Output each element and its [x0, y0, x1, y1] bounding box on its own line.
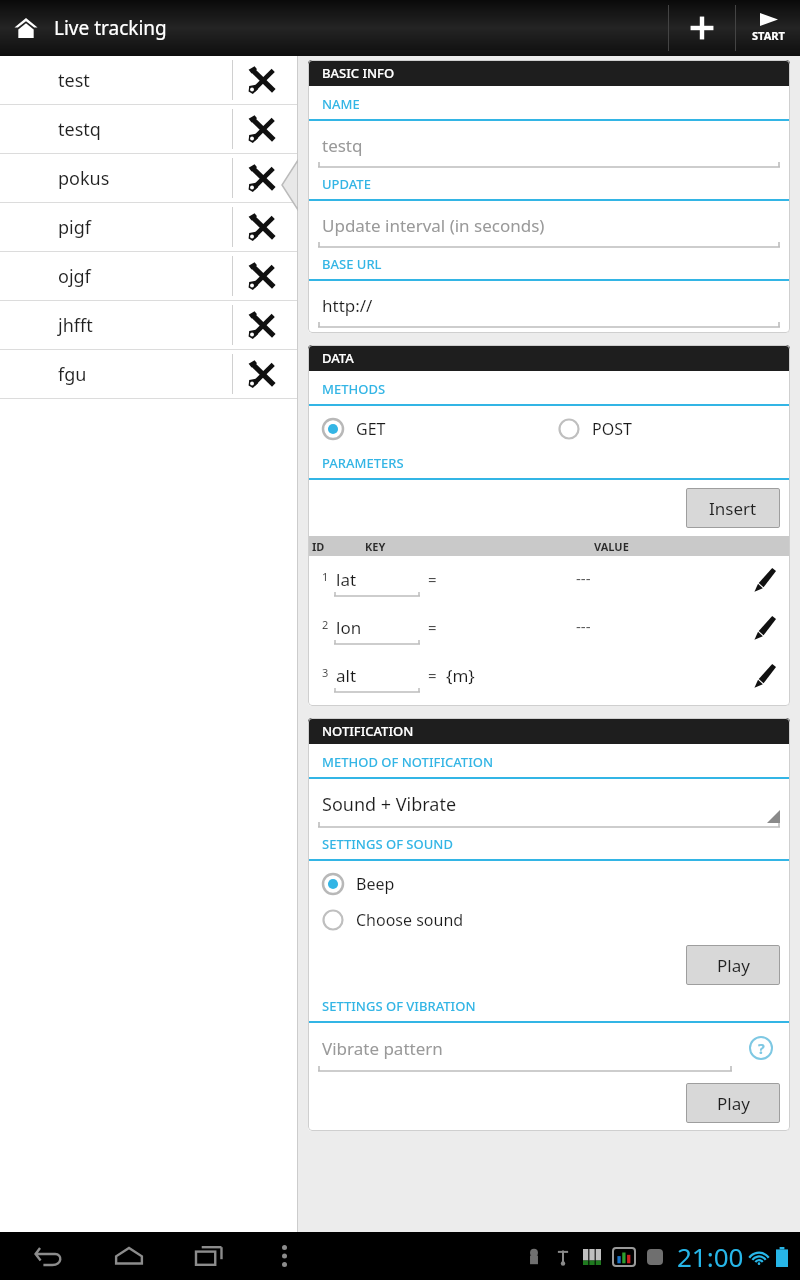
button[interactable]: Settings — [233, 56, 298, 104]
staticText: DATA — [322, 349, 354, 367]
button[interactable]: ojgf — [0, 252, 298, 300]
button[interactable]: Edit parameter — [748, 659, 782, 693]
staticText: SETTINGS OF SOUND — [322, 835, 453, 853]
button[interactable]: Settings — [233, 154, 298, 202]
button[interactable]: 2 — [308, 604, 790, 652]
button[interactable]: Edit parameter — [748, 611, 782, 645]
staticText: Update interval (in seconds) — [322, 214, 545, 237]
staticText: Insert — [709, 497, 757, 520]
staticText: BASE URL — [322, 255, 382, 273]
staticText: {m} — [446, 664, 475, 687]
staticText: METHOD OF NOTIFICATION — [322, 753, 494, 771]
staticText: lon — [336, 616, 362, 639]
button[interactable]: Play — [686, 945, 780, 985]
button[interactable]: Home — [100, 1232, 158, 1280]
staticText: = — [428, 569, 437, 589]
button[interactable]: Recents — [180, 1232, 238, 1280]
staticText: NOTIFICATION — [322, 722, 414, 740]
staticText: ID — [312, 539, 325, 554]
button[interactable]: More options — [264, 1232, 304, 1280]
staticText: --- — [576, 616, 591, 636]
button[interactable]: pigf — [0, 203, 298, 251]
staticText: 1 — [322, 569, 329, 584]
staticText: GET — [356, 418, 386, 440]
button[interactable]: Back — [20, 1232, 78, 1280]
staticText: PARAMETERS — [322, 454, 404, 472]
button[interactable]: jhfft — [0, 301, 298, 349]
button[interactable]: Settings — [233, 301, 298, 349]
staticText: alt — [336, 664, 357, 687]
button[interactable]: Insert — [686, 488, 780, 528]
staticText: = — [428, 617, 437, 637]
button[interactable]: Add — [669, 0, 735, 56]
staticText: lat — [336, 568, 357, 591]
staticText: Live tracking — [54, 15, 167, 41]
staticText: testq — [58, 117, 101, 142]
button[interactable]: GET — [322, 414, 558, 444]
button[interactable]: Choose sound — [322, 905, 464, 935]
button[interactable]: Beep — [322, 869, 395, 899]
button[interactable]: fgu — [0, 350, 298, 398]
staticText: BASIC INFO — [322, 64, 395, 82]
staticText: KEY — [365, 539, 386, 554]
staticText: Play — [717, 1092, 750, 1115]
staticText: test — [58, 68, 90, 93]
button[interactable]: test — [0, 56, 298, 104]
staticText: = — [428, 665, 437, 685]
staticText: Choose sound — [356, 909, 464, 931]
button[interactable]: Play — [686, 1083, 780, 1123]
staticText: UPDATE — [322, 175, 371, 193]
button[interactable]: Live tracking — [14, 15, 167, 41]
staticText: SETTINGS OF VIBRATION — [322, 997, 476, 1015]
staticText: fgu — [58, 362, 87, 387]
button[interactable]: 1 — [308, 556, 790, 604]
button[interactable]: Settings — [233, 350, 298, 398]
staticText: Beep — [356, 873, 395, 895]
button[interactable]: pokus — [0, 154, 298, 202]
staticText: testq — [322, 134, 363, 157]
button[interactable]: 3 — [308, 652, 790, 700]
staticText: 21:00 — [677, 1239, 744, 1274]
staticText: jhfft — [58, 313, 93, 338]
staticText: Vibrate pattern — [322, 1037, 443, 1060]
staticText: pigf — [58, 215, 91, 240]
staticText: Sound + Vibrate — [322, 792, 457, 817]
staticText: 2 — [322, 617, 329, 632]
staticText: http:// — [322, 294, 373, 317]
staticText: 3 — [322, 665, 329, 680]
button[interactable]: Start — [736, 0, 800, 56]
button[interactable]: Settings — [233, 105, 298, 153]
button[interactable]: Settings — [233, 252, 298, 300]
staticText: VALUE — [594, 539, 629, 554]
button[interactable]: testq — [0, 105, 298, 153]
staticText: ojgf — [58, 264, 91, 289]
button[interactable]: POST — [558, 414, 632, 444]
staticText: POST — [592, 418, 632, 440]
staticText: NAME — [322, 95, 360, 113]
button[interactable]: Settings — [233, 203, 298, 251]
staticText: ? — [758, 1039, 765, 1058]
button[interactable]: Edit parameter — [748, 563, 782, 597]
staticText: --- — [576, 568, 591, 588]
staticText: START — [752, 28, 785, 43]
staticText: Play — [717, 954, 750, 977]
staticText: pokus — [58, 166, 110, 191]
staticText: METHODS — [322, 380, 386, 398]
button[interactable]: Help — [746, 1033, 776, 1063]
